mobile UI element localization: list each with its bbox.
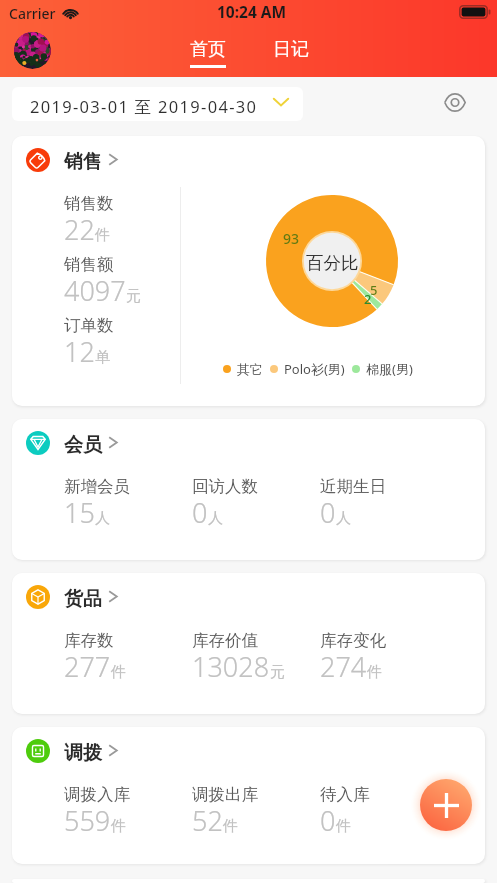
staticText: 调拨入库 [64, 784, 130, 805]
staticText: 件 [223, 817, 238, 836]
staticText: 274 [320, 648, 367, 685]
staticText: 元 [126, 287, 141, 306]
staticText: 12 [64, 333, 95, 370]
staticText: 待入库 [320, 784, 370, 805]
staticText: 277 [64, 648, 111, 685]
staticText: 销售额 [64, 254, 114, 275]
staticText: 52 [192, 802, 223, 839]
staticText: 订单数 [64, 315, 114, 336]
staticText: 件 [111, 817, 126, 836]
staticText: 销售数 [64, 193, 114, 214]
button[interactable]: 日记 [272, 38, 310, 61]
staticText: 2019-03-01 至 2019-04-30 [30, 95, 258, 118]
staticText: 库存变化 [320, 630, 386, 651]
button[interactable]: 会员 [12, 419, 485, 459]
staticText: 百分比 [306, 252, 359, 274]
button[interactable]: Toggle visibility [440, 87, 470, 117]
button[interactable]: Profile [14, 32, 51, 69]
staticText: 件 [95, 226, 110, 245]
staticText: 货品 [64, 587, 102, 611]
button[interactable]: 2019-03-01 至 2019-04-30 [12, 87, 303, 121]
staticText: 新增会员 [64, 476, 130, 497]
staticText: 人 [336, 509, 351, 528]
staticText: 15 [64, 494, 95, 531]
staticText: 人 [95, 509, 110, 528]
button[interactable]: Add [420, 779, 472, 831]
staticText: 5 [370, 281, 378, 299]
staticText: 13028 [192, 648, 270, 685]
staticText: 其它 [237, 361, 263, 377]
staticText: 单 [95, 348, 110, 367]
staticText: 日记 [272, 38, 310, 61]
staticText: 销售 [64, 150, 102, 174]
staticText: 库存数 [64, 630, 114, 651]
staticText: 库存价值 [192, 630, 258, 651]
staticText: 0 [192, 494, 208, 531]
staticText: 回访人数 [192, 476, 258, 497]
staticText: 10:24 AM [217, 1, 287, 22]
staticText: 22 [64, 211, 95, 248]
staticText: 调拨 [64, 741, 102, 765]
button[interactable]: 销售 [12, 136, 485, 176]
staticText: 近期生日 [320, 476, 386, 497]
staticText: 调拨出库 [192, 784, 258, 805]
button[interactable]: 调拨 [12, 727, 485, 767]
staticText: 首页 [190, 38, 226, 61]
staticText: 件 [367, 663, 382, 682]
staticText: 4097 [64, 272, 126, 309]
button[interactable]: 货品 [12, 573, 485, 613]
staticText: 会员 [64, 433, 102, 457]
staticText: Carrier [9, 4, 56, 23]
staticText: 件 [111, 663, 126, 682]
staticText: 0 [320, 802, 336, 839]
staticText: 2 [364, 290, 372, 308]
staticText: 559 [64, 802, 111, 839]
staticText: 元 [270, 663, 285, 682]
staticText: 件 [336, 817, 351, 836]
staticText: 棉服(男) [366, 360, 413, 378]
staticText: 人 [208, 509, 223, 528]
staticText: 0 [320, 494, 336, 531]
staticText: 93 [283, 229, 300, 248]
button[interactable]: 首页 [189, 38, 227, 68]
staticText: Polo衫(男) [284, 360, 345, 378]
